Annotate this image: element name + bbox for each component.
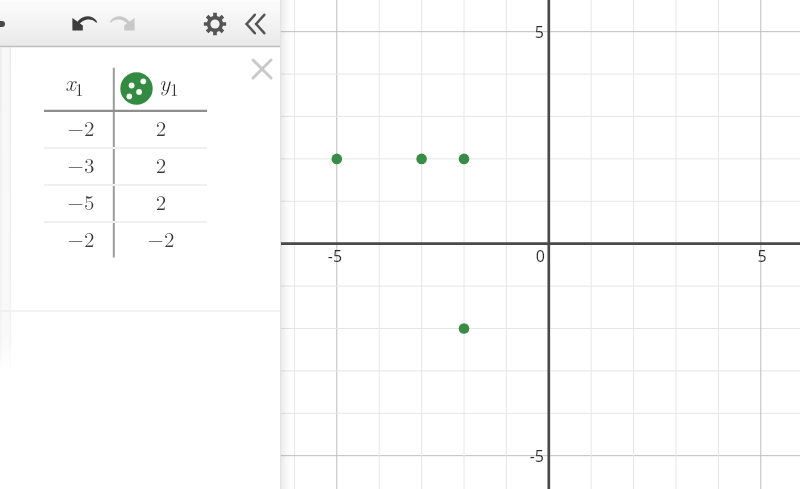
button[interactable]: 2 [131, 107, 191, 135]
staticText: -5 [484, 445, 544, 467]
button[interactable]: Settings [197, 6, 233, 42]
staticText: 1 [170, 77, 179, 101]
staticText: y [159, 65, 171, 98]
staticText: 5 [484, 21, 544, 43]
staticText: −2 [51, 223, 111, 251]
button[interactable]: Add item [0, 21, 5, 27]
button[interactable]: 2 [131, 181, 191, 209]
button[interactable]: −3 [51, 144, 111, 172]
staticText: x [65, 65, 76, 98]
button[interactable]: Close [248, 55, 276, 83]
button[interactable]: −2 [51, 107, 111, 135]
button[interactable]: −5 [51, 181, 111, 209]
staticText: −2 [131, 223, 191, 251]
button[interactable]: Collapse panel [238, 6, 274, 42]
staticText: 1 [75, 77, 84, 101]
staticText: −5 [51, 186, 111, 214]
staticText: −3 [51, 149, 111, 177]
button[interactable]: 2 [131, 144, 191, 172]
staticText: 2 [131, 186, 191, 214]
button[interactable]: −2 [131, 218, 191, 246]
staticText: 2 [131, 149, 191, 177]
staticText: −2 [51, 112, 111, 140]
staticText: -5 [305, 245, 365, 267]
button[interactable]: Undo [66, 6, 102, 42]
button[interactable]: Redo [105, 6, 141, 42]
staticText: 2 [131, 112, 191, 140]
staticText: 5 [732, 245, 792, 267]
staticText: 0 [485, 245, 545, 267]
button[interactable]: −2 [51, 218, 111, 246]
